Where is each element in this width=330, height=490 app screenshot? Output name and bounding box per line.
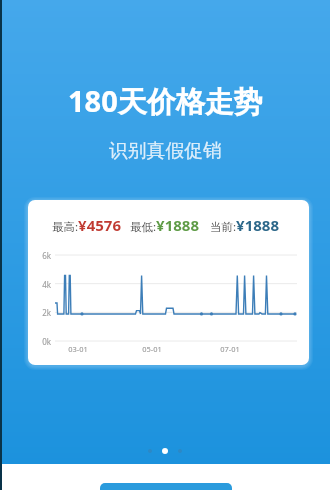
staticText: 05-01 [136,344,168,354]
staticText: 6k [38,250,51,261]
button[interactable]: 最高:¥4576 [28,200,309,365]
staticText: 180天价格走势 [68,81,263,121]
staticText: 0k [38,336,51,347]
staticText: 最高:¥4576 [52,215,121,235]
staticText: 07-01 [214,344,246,354]
staticText: 4k [38,279,51,290]
staticText: 03-01 [62,344,94,354]
staticText: 最低:¥1888 [130,215,199,235]
button[interactable] [100,483,232,490]
staticText: 识别真假促销 [109,139,222,163]
staticText: 2k [38,307,51,318]
staticText: 当前:¥1888 [210,215,279,235]
